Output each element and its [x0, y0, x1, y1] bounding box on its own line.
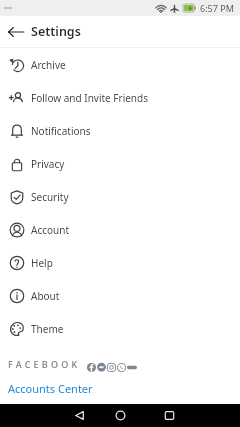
button[interactable]: Archive — [0, 48, 240, 81]
staticText: Account — [31, 223, 70, 237]
button[interactable]: Back — [64, 404, 94, 427]
button[interactable]: Security — [0, 180, 240, 213]
staticText: FACEBOOK — [8, 358, 81, 370]
button[interactable]: About — [0, 279, 240, 312]
button[interactable]: Recents — [154, 404, 184, 427]
button[interactable]: Accounts Center — [0, 379, 240, 398]
staticText: Settings — [31, 23, 81, 40]
button[interactable]: Back — [0, 16, 31, 47]
staticText: Theme — [31, 322, 64, 336]
staticText: Notifications — [31, 124, 91, 138]
staticText: Privacy — [31, 157, 65, 171]
button[interactable]: Home — [105, 404, 135, 427]
button[interactable]: Notifications — [0, 114, 240, 147]
staticText: Follow and Invite Friends — [31, 91, 148, 105]
button[interactable]: Theme — [0, 312, 240, 345]
staticText: Archive — [31, 58, 66, 72]
button[interactable]: Privacy — [0, 147, 240, 180]
staticText: About — [31, 289, 60, 303]
staticText: 6:57 PM — [200, 2, 234, 14]
staticText: Accounts Center — [8, 381, 93, 396]
staticText: Help — [31, 256, 53, 270]
staticText: Security — [31, 190, 69, 204]
button[interactable]: Follow and Invite Friends — [0, 81, 240, 114]
button[interactable]: Account — [0, 213, 240, 246]
button[interactable]: Help — [0, 246, 240, 279]
